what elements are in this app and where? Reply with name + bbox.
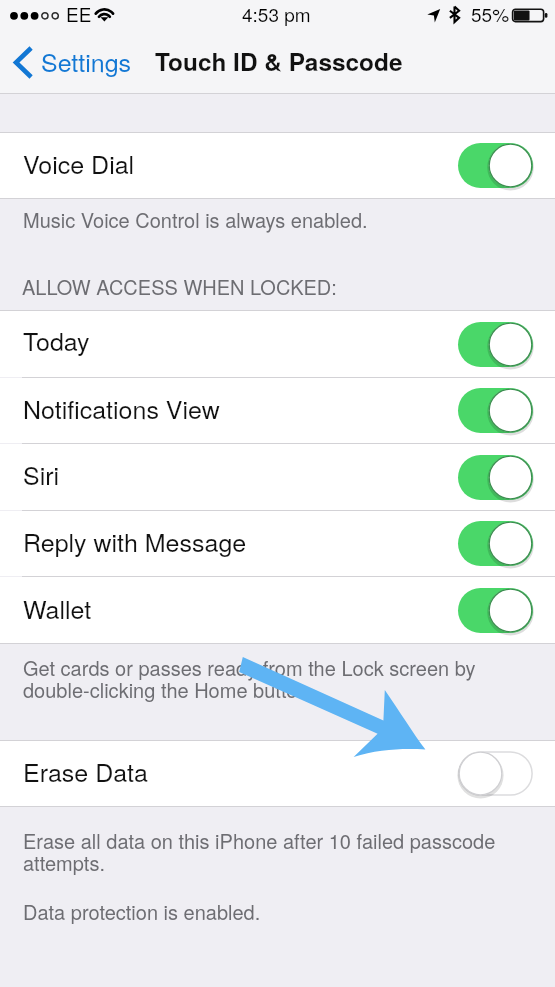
- button[interactable]: Switch on: [458, 143, 533, 188]
- staticText: Data protection is enabled.: [23, 897, 535, 926]
- staticText: Today: [23, 322, 90, 358]
- staticText: 4:53 pm: [242, 0, 311, 27]
- button[interactable]: Back to Settings: [4, 41, 140, 89]
- button[interactable]: Reply with Message: [0, 511, 555, 576]
- staticText: Get cards or passes ready from the Lock …: [23, 653, 535, 703]
- button[interactable]: Switch off: [458, 751, 533, 796]
- staticText: Settings: [41, 43, 132, 79]
- button[interactable]: Voice Dial: [0, 133, 555, 198]
- button[interactable]: Switch on: [458, 322, 533, 367]
- staticText: Touch ID & Passcode: [155, 44, 403, 79]
- button[interactable]: Wallet: [0, 577, 555, 643]
- staticText: Wallet: [23, 590, 92, 626]
- staticText: Notifications View: [23, 390, 220, 426]
- staticText: ALLOW ACCESS WHEN LOCKED:: [22, 272, 337, 301]
- button[interactable]: Notifications View: [0, 378, 555, 443]
- staticText: Music Voice Control is always enabled.: [23, 205, 535, 234]
- button[interactable]: Switch on: [458, 388, 533, 433]
- staticText: 55%: [471, 0, 510, 27]
- button[interactable]: Siri: [0, 444, 555, 510]
- button[interactable]: Switch on: [458, 521, 533, 566]
- staticText: Voice Dial: [23, 145, 135, 181]
- button[interactable]: Switch on: [458, 455, 533, 500]
- staticText: EE: [66, 0, 92, 27]
- button[interactable]: Today: [0, 311, 555, 377]
- staticText: Siri: [23, 456, 60, 492]
- button[interactable]: Erase Data: [0, 741, 555, 806]
- staticText: Erase Data: [23, 753, 148, 789]
- staticText: Erase all data on this iPhone after 10 f…: [23, 826, 535, 876]
- staticText: Reply with Message: [23, 523, 247, 559]
- button[interactable]: Switch on: [458, 588, 533, 633]
